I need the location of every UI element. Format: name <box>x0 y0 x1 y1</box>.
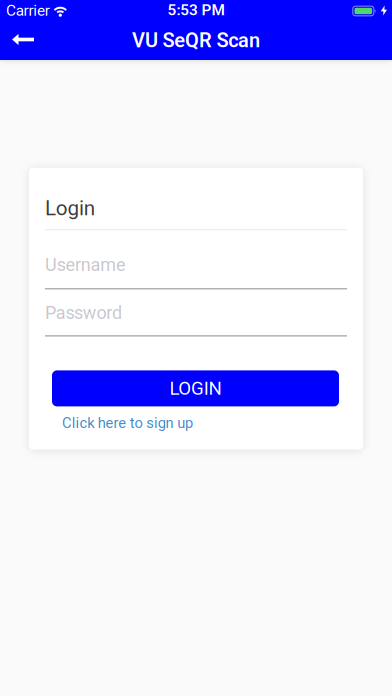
staticText: Carrier <box>6 1 50 19</box>
staticText: 5:53 PM <box>168 1 224 19</box>
staticText: Click here to sign up <box>62 414 193 432</box>
button[interactable]: Click here to sign up <box>62 414 193 432</box>
staticText: LOGIN <box>169 377 222 399</box>
button[interactable]: LOGIN <box>52 370 339 406</box>
staticText: Username <box>45 254 126 275</box>
staticText: Password <box>45 302 122 323</box>
staticText: Login <box>45 196 95 220</box>
staticText: VU SeQR Scan <box>132 29 260 52</box>
button[interactable]: Back <box>0 25 44 54</box>
